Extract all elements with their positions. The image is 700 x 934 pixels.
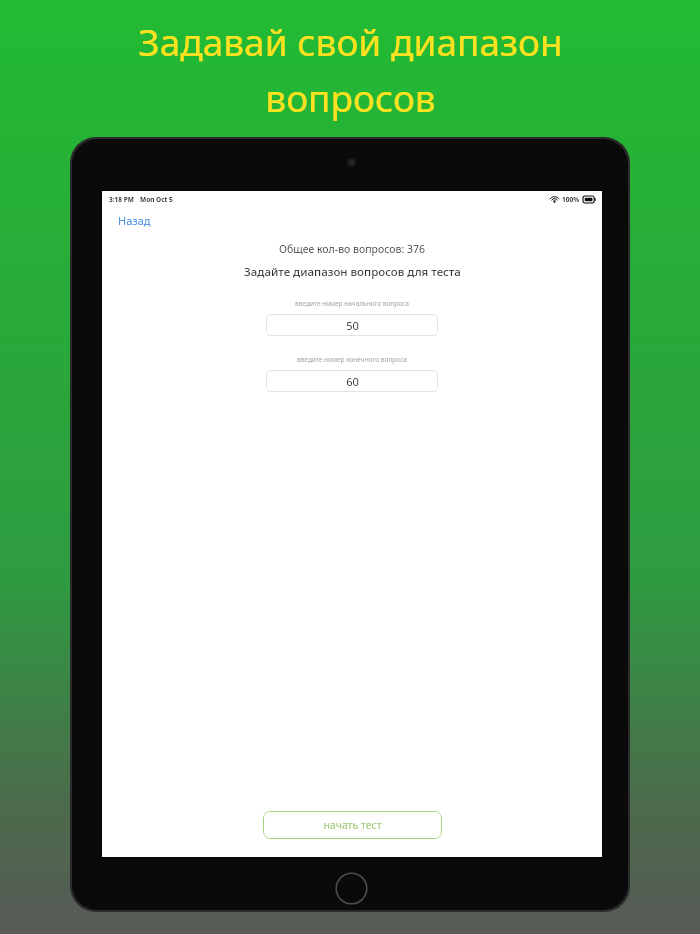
staticText: Общее кол-во вопросов: 376 xyxy=(279,242,425,256)
staticText: 50 xyxy=(346,318,359,333)
button[interactable]: Назад xyxy=(108,209,161,232)
staticText: 100% xyxy=(562,195,580,204)
staticText: 60 xyxy=(346,374,359,389)
staticText: Задайте диапазон вопросов для теста xyxy=(244,264,461,280)
staticText: начать тест xyxy=(323,818,382,832)
staticText: 3:18 PM xyxy=(109,195,134,204)
button[interactable]: начать тест xyxy=(263,811,442,839)
staticText: введите номер конечного вопроса xyxy=(297,355,407,364)
staticText: Mon Oct 5 xyxy=(140,195,173,204)
staticText: Задавай свой диапазон xyxy=(138,16,563,66)
other: Home xyxy=(335,872,368,905)
staticText: вопросов xyxy=(265,72,436,122)
staticText: введите номер начального вопроса xyxy=(295,299,409,308)
staticText: Назад xyxy=(118,213,151,228)
button[interactable]: 60 xyxy=(266,370,438,392)
button[interactable]: 50 xyxy=(266,314,438,336)
